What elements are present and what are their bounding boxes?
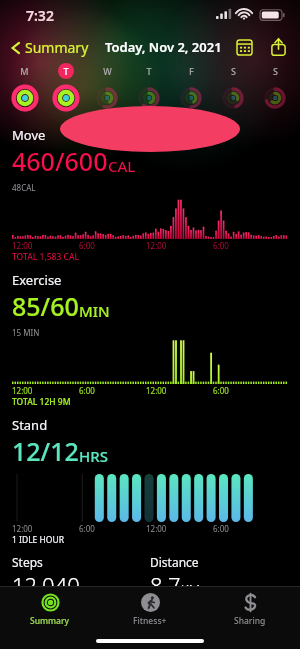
staticText: W	[103, 65, 112, 77]
staticText: 6:00	[79, 385, 95, 396]
button[interactable]: S	[254, 62, 296, 80]
button[interactable]: W	[86, 62, 128, 80]
staticText: 12:00	[146, 240, 167, 251]
staticText: S	[273, 65, 278, 77]
staticText: 6:00	[213, 240, 229, 251]
button[interactable]: Fitness+	[100, 587, 200, 633]
button[interactable]: Sharing	[200, 587, 300, 633]
staticText: 1 IDLE HOUR	[12, 534, 64, 546]
staticText: 48CAL	[12, 182, 36, 193]
button[interactable]: T	[128, 62, 170, 80]
staticText: Stand	[12, 416, 48, 434]
staticText: 12:00	[146, 385, 167, 396]
button[interactable]: Day 6 rings	[212, 80, 254, 116]
staticText: HRS	[79, 446, 108, 466]
staticText: 12/12	[12, 434, 79, 468]
button[interactable]: T	[45, 62, 86, 80]
button[interactable]: Distance	[150, 554, 288, 600]
staticText: Summary	[25, 38, 89, 57]
staticText: CAL	[108, 156, 136, 176]
button[interactable]: Stand	[0, 408, 300, 546]
button[interactable]: Exercise	[0, 263, 300, 408]
button[interactable]: Calendar	[232, 35, 256, 59]
button[interactable]: Move	[0, 126, 300, 263]
staticText: F	[189, 65, 194, 77]
staticText: Exercise	[12, 271, 62, 289]
staticText: Distance	[150, 554, 199, 570]
staticText: T	[63, 65, 69, 77]
staticText: Fitness+	[133, 615, 167, 627]
button[interactable]: Day 5 rings	[170, 80, 212, 116]
staticText: 12,040	[12, 570, 80, 600]
staticText: TOTAL 1,583 CAL	[12, 251, 79, 263]
button[interactable]: Day 1 rings	[4, 80, 45, 116]
staticText: Today, Nov 2, 2021	[105, 38, 222, 56]
button[interactable]: Day 3 rings	[86, 80, 128, 116]
button[interactable]: Share	[266, 35, 290, 59]
staticText: 12:00	[146, 523, 167, 534]
button[interactable]: Day 4 rings	[128, 80, 170, 116]
staticText: 460/600	[12, 144, 108, 178]
button[interactable]: F	[170, 62, 212, 80]
button[interactable]: M	[4, 62, 45, 80]
staticText: 6:00	[79, 523, 95, 534]
staticText: 85/60	[12, 289, 79, 323]
staticText: MIN	[79, 301, 110, 321]
staticText: 6:00	[79, 240, 95, 251]
staticText: KM	[181, 580, 200, 598]
staticText: 15 MIN	[12, 327, 40, 338]
button[interactable]: Day 7 rings	[254, 80, 296, 116]
staticText: T	[146, 65, 152, 77]
button[interactable]: S	[212, 62, 254, 80]
staticText: M	[20, 65, 29, 77]
staticText: 6:00	[213, 523, 229, 534]
staticText: TOTAL 12H 9M	[12, 396, 71, 408]
staticText: Summary	[30, 615, 70, 627]
button[interactable]: Summary	[10, 38, 95, 57]
staticText: Sharing	[234, 615, 266, 627]
staticText: Flights Climbed	[12, 606, 107, 624]
button[interactable]: Steps	[12, 554, 150, 600]
staticText: 12:00	[12, 240, 33, 251]
staticText: Steps	[12, 554, 43, 570]
button[interactable]: Day 2 rings	[45, 80, 86, 116]
staticText: 6:00	[213, 385, 229, 396]
staticText: 12:00	[12, 523, 33, 534]
staticText: 7:32	[26, 6, 54, 25]
staticText: S	[231, 65, 236, 77]
staticText: 12:00	[12, 385, 33, 396]
staticText: Move	[12, 126, 46, 144]
button[interactable]: Summary	[0, 587, 100, 633]
staticText: 8.7	[150, 570, 181, 600]
